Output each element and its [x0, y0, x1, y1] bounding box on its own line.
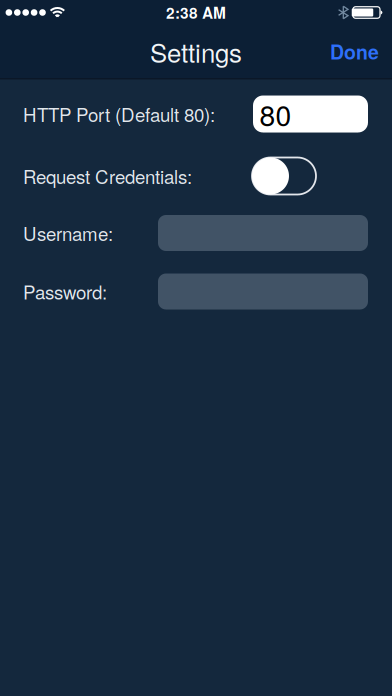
staticText: 2:38 AM [166, 1, 226, 24]
button[interactable]: Username [158, 215, 368, 251]
staticText: Password: [23, 278, 107, 305]
staticText: Request Credentials: [23, 163, 192, 189]
staticText: Settings [150, 33, 242, 70]
button[interactable]: Request Credentials [252, 157, 316, 194]
button[interactable]: Done [330, 37, 379, 65]
button[interactable]: HTTP Port [253, 95, 368, 132]
staticText: Done [330, 37, 379, 65]
staticText: HTTP Port (Default 80): [23, 101, 215, 127]
staticText: 80 [259, 94, 291, 134]
button[interactable]: Password [158, 273, 368, 309]
staticText: Username: [23, 220, 113, 246]
